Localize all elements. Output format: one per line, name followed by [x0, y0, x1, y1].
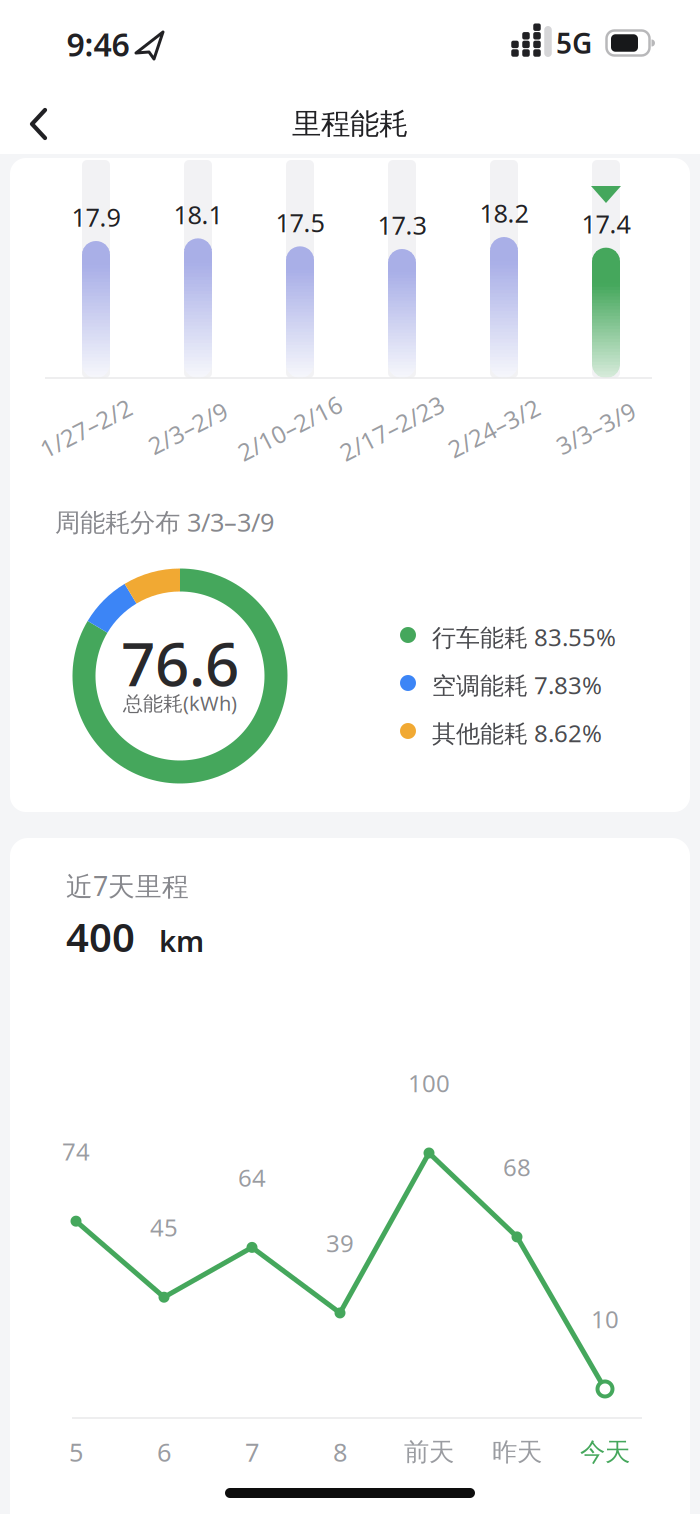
staticText: 17.5: [275, 205, 324, 239]
staticText: 其他能耗 8.62%: [432, 717, 602, 749]
staticText: 2/10–2/16: [233, 412, 347, 444]
staticText: 总能耗(kWh): [123, 690, 237, 716]
staticText: 里程能耗: [292, 106, 408, 142]
staticText: 400: [66, 910, 135, 963]
staticText: 2/24–3/2: [444, 412, 544, 444]
staticText: 10: [591, 1303, 619, 1335]
staticText: 17.3: [377, 208, 426, 242]
staticText: 行车能耗 83.55%: [432, 621, 616, 653]
staticText: 18.2: [479, 196, 528, 230]
button[interactable]: [13, 98, 65, 150]
staticText: 1/27–2/2: [36, 412, 136, 444]
staticText: 近7天里程: [66, 868, 189, 903]
staticText: 18.1: [173, 197, 222, 231]
staticText: 周能耗分布 3/3–3/9: [55, 505, 274, 539]
staticText: 3/3–3/9: [553, 412, 639, 444]
staticText: 100: [408, 1067, 450, 1099]
staticText: 8: [333, 1435, 347, 1469]
staticText: 空调能耗 7.83%: [432, 669, 602, 701]
staticText: 6: [157, 1435, 171, 1469]
staticText: 9:46: [66, 23, 129, 65]
staticText: 2/3–2/9: [145, 412, 231, 444]
staticText: 76.6: [121, 623, 239, 703]
staticText: 5G: [556, 24, 592, 62]
staticText: 45: [150, 1211, 178, 1243]
staticText: 17.4: [581, 207, 630, 240]
staticText: 前天: [404, 1436, 454, 1467]
staticText: 68: [503, 1151, 531, 1183]
staticText: 昨天: [492, 1436, 542, 1467]
staticText: 2/17–2/23: [335, 412, 449, 444]
staticText: 74: [62, 1135, 90, 1167]
staticText: 7: [245, 1435, 259, 1469]
staticText: km: [159, 921, 204, 960]
staticText: 17.9: [71, 200, 120, 234]
staticText: 5: [69, 1435, 83, 1469]
staticText: 今天: [580, 1436, 630, 1467]
staticText: 64: [238, 1161, 266, 1193]
staticText: 39: [326, 1227, 354, 1259]
